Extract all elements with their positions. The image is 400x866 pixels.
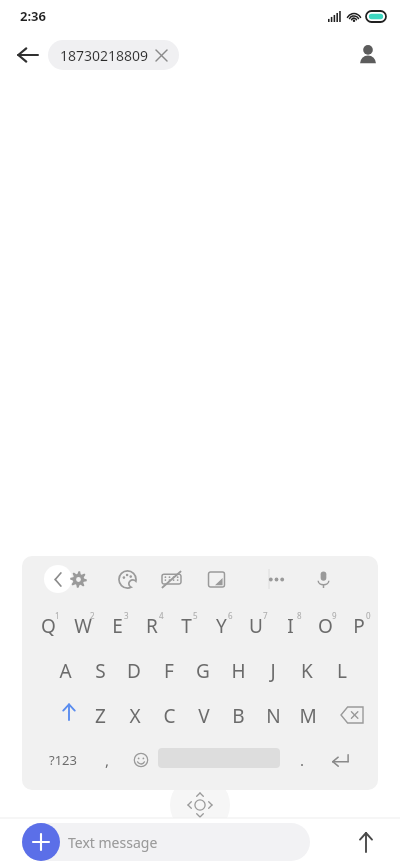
staticText: 4 — [159, 610, 164, 621]
button[interactable]: I — [273, 607, 307, 645]
staticText: U — [249, 613, 263, 639]
button[interactable]: Send — [345, 821, 387, 863]
button[interactable]: P — [342, 607, 376, 645]
staticText: E — [112, 613, 123, 639]
staticText: M — [299, 703, 317, 729]
staticText: L — [337, 658, 347, 684]
button[interactable]: Q — [31, 607, 65, 645]
button[interactable]: N — [256, 697, 290, 735]
staticText: 3 — [124, 610, 129, 621]
button[interactable]: T — [169, 607, 203, 645]
staticText: Z — [95, 703, 106, 729]
button[interactable]: R — [135, 607, 169, 645]
staticText: Y — [216, 613, 227, 639]
button[interactable]: Settings — [64, 565, 92, 593]
button[interactable]: H — [221, 652, 255, 690]
button[interactable]: Hide keyboard — [157, 565, 185, 593]
button[interactable]: Cursor control — [170, 775, 230, 835]
button[interactable]: L — [325, 652, 359, 690]
button[interactable]: Add attachment — [22, 823, 60, 861]
staticText: S — [95, 658, 106, 684]
staticText: 8 — [297, 610, 302, 621]
staticText: V — [198, 703, 210, 729]
button[interactable]: Backspace — [332, 695, 372, 735]
button[interactable]: K — [290, 652, 324, 690]
staticText: ?123 — [49, 751, 77, 769]
staticText: H — [231, 658, 246, 684]
button[interactable]: E — [100, 607, 134, 645]
staticText: G — [196, 658, 210, 684]
button[interactable]: Shift — [52, 695, 86, 729]
button[interactable]: Voice input — [309, 565, 337, 593]
button[interactable]: D — [117, 652, 151, 690]
staticText: Text message — [68, 833, 158, 852]
staticText: I — [287, 613, 294, 639]
staticText: 1 — [55, 610, 60, 621]
button[interactable]: B — [221, 697, 255, 735]
staticText: Q — [41, 613, 56, 639]
staticText: N — [266, 703, 281, 729]
button[interactable]: Y — [204, 607, 238, 645]
staticText: R — [146, 613, 158, 639]
staticText: J — [270, 658, 276, 684]
staticText: 7 — [263, 610, 268, 621]
button[interactable]: 18730218809 — [48, 40, 179, 70]
button[interactable]: X — [118, 697, 152, 735]
button[interactable]: Close toolbar — [44, 565, 72, 593]
staticText: 2 — [90, 610, 95, 621]
button[interactable]: Enter — [320, 743, 360, 777]
staticText: D — [127, 658, 141, 684]
staticText: X — [129, 703, 141, 729]
button[interactable]: S — [83, 652, 117, 690]
button[interactable]: G — [186, 652, 220, 690]
staticText: A — [59, 658, 72, 684]
button[interactable]: V — [187, 697, 221, 735]
button[interactable]: Contact — [348, 35, 388, 75]
button[interactable]: . — [287, 743, 317, 777]
staticText: 18730218809 — [60, 46, 149, 65]
button[interactable]: , — [92, 743, 122, 777]
button[interactable]: C — [152, 697, 186, 735]
button[interactable]: Back — [8, 35, 48, 75]
button[interactable]: Z — [83, 697, 117, 735]
staticText: P — [353, 613, 365, 639]
button[interactable]: Emoji — [125, 743, 157, 777]
staticText: K — [301, 658, 313, 684]
staticText: . — [300, 750, 305, 770]
staticText: W — [74, 613, 92, 639]
button[interactable]: J — [256, 652, 290, 690]
staticText: C — [163, 703, 176, 729]
staticText: 0 — [366, 610, 371, 621]
button[interactable]: Text message — [22, 823, 310, 861]
staticText: , — [105, 750, 110, 770]
staticText: 9 — [332, 610, 337, 621]
staticText: B — [232, 703, 245, 729]
staticText: T — [181, 613, 192, 639]
button[interactable]: M — [291, 697, 325, 735]
button[interactable]: O — [308, 607, 342, 645]
button[interactable]: More options — [262, 565, 290, 593]
button[interactable]: ?123 — [39, 743, 87, 777]
button[interactable]: W — [66, 607, 100, 645]
staticText: 2:36 — [20, 7, 46, 25]
button[interactable]: Resize — [202, 565, 230, 593]
staticText: F — [164, 658, 174, 684]
button[interactable]: F — [152, 652, 186, 690]
staticText: 5 — [193, 610, 198, 621]
staticText: 6 — [228, 610, 233, 621]
button[interactable]: A — [48, 652, 82, 690]
staticText: O — [318, 613, 333, 639]
button[interactable]: Theme — [113, 565, 141, 593]
button[interactable]: U — [239, 607, 273, 645]
